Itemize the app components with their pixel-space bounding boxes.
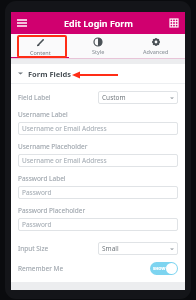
staticText: SHOW bbox=[153, 266, 166, 271]
button[interactable]: Custom bbox=[98, 91, 178, 104]
staticText: Remember Me bbox=[18, 264, 64, 273]
button[interactable]: Username or Email Address bbox=[18, 154, 178, 167]
staticText: Username or Email Address bbox=[22, 156, 107, 165]
staticText: Style bbox=[92, 48, 105, 55]
staticText: Edit Login Form bbox=[64, 17, 133, 29]
button[interactable]: Menu bbox=[14, 15, 30, 31]
button[interactable]: Remember Me toggle, on bbox=[150, 262, 178, 275]
staticText: Password bbox=[22, 188, 52, 197]
staticText: Form Fields bbox=[28, 69, 71, 79]
staticText: Password bbox=[22, 220, 52, 229]
button[interactable]: Username or Email Address bbox=[18, 122, 178, 135]
button[interactable]: Content bbox=[11, 34, 69, 59]
staticText: Input Size bbox=[18, 244, 49, 253]
staticText: Password Placeholder bbox=[18, 206, 86, 215]
staticText: Username or Email Address bbox=[22, 124, 107, 133]
staticText: Advanced bbox=[143, 48, 169, 55]
button[interactable]: Password bbox=[18, 218, 178, 231]
staticText: Username Placeholder bbox=[18, 142, 88, 151]
button[interactable]: Form Fields bbox=[11, 64, 185, 83]
staticText: Username Label bbox=[18, 110, 68, 119]
button[interactable]: Small bbox=[98, 242, 178, 255]
button[interactable]: Style bbox=[69, 34, 127, 59]
staticText: Field Label bbox=[18, 93, 51, 102]
staticText: Custom bbox=[102, 93, 126, 102]
staticText: Small bbox=[102, 244, 119, 253]
button[interactable]: Advanced bbox=[127, 34, 185, 59]
button[interactable]: Widgets bbox=[166, 15, 182, 31]
staticText: Password Label bbox=[18, 174, 66, 183]
staticText: Content bbox=[30, 49, 51, 56]
button[interactable]: Password bbox=[18, 186, 178, 199]
